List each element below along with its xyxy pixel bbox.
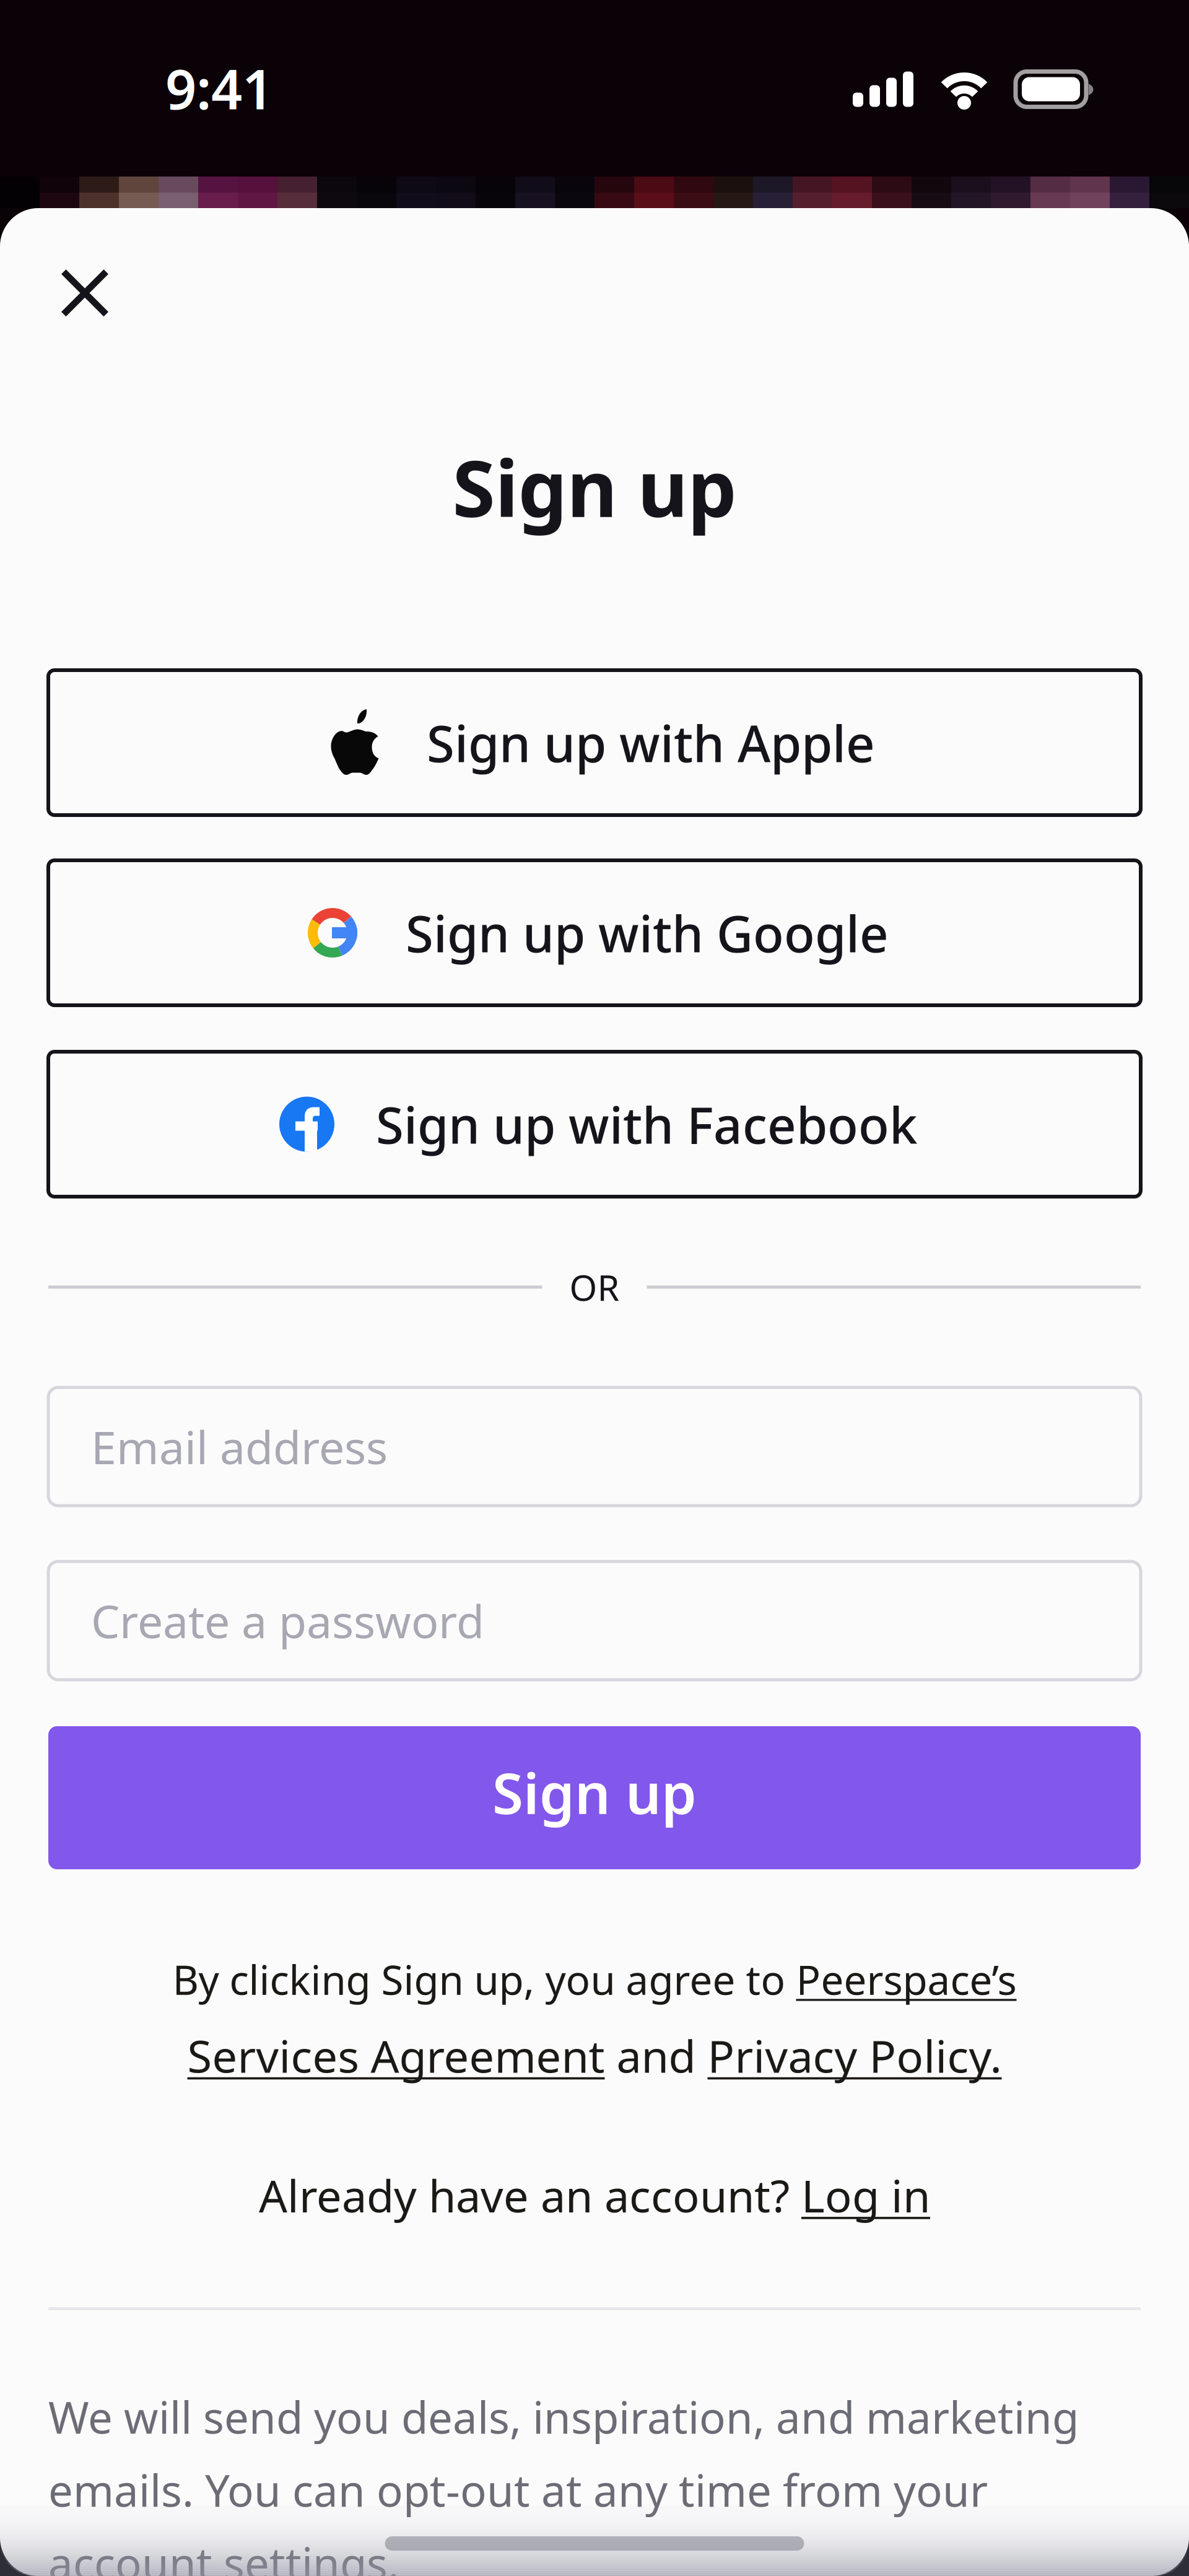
button[interactable]: Sign up — [48, 1726, 1141, 1869]
staticText: Sign up — [492, 1755, 697, 1829]
staticText: 9:41 — [165, 52, 273, 124]
button[interactable]: Already have an account? Log in — [0, 2167, 1189, 2224]
staticText: account settings. — [48, 2534, 399, 2576]
staticText: Sign up — [452, 435, 737, 538]
staticText: OR — [569, 1263, 620, 1311]
button[interactable]: Create a password — [48, 1561, 1141, 1680]
button[interactable]: Sign up with Facebook — [48, 1052, 1141, 1197]
staticText: Email address — [91, 1416, 388, 1477]
staticText: By clicking Sign up, you agree to Peersp… — [172, 1952, 1017, 2006]
button[interactable]: Sign up with Apple — [48, 670, 1141, 815]
button[interactable]: Sign up with Google — [48, 860, 1141, 1005]
button[interactable]: Close — [37, 245, 133, 341]
staticText: Sign up with Apple — [427, 709, 875, 776]
staticText: Create a password — [91, 1590, 484, 1651]
staticText: Sign up with Facebook — [376, 1091, 917, 1158]
staticText: Sign up with Google — [406, 899, 889, 966]
staticText: Services Agreement and Privacy Policy. — [187, 2026, 1002, 2085]
staticText: Already have an account? Log in — [259, 2165, 930, 2225]
staticText: We will send you deals, inspiration, and… — [48, 2388, 1079, 2446]
staticText: emails. You can opt-out at any time from… — [48, 2461, 988, 2519]
button[interactable]: Email address — [48, 1387, 1141, 1506]
